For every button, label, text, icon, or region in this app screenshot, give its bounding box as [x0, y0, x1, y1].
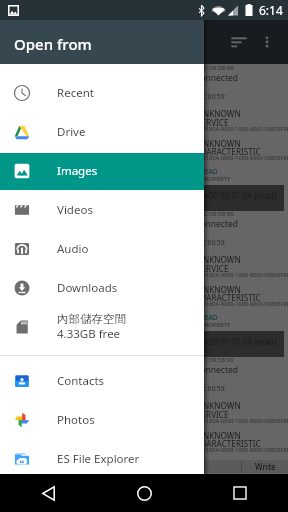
staticText: SERVICE	[197, 263, 229, 274]
staticText: SERVICE	[197, 409, 229, 420]
staticText: 0x00 00 01 0A (read)	[200, 336, 277, 347]
staticText: 0000180A-0000-1000-8000-00805F9B34FB	[193, 154, 288, 162]
button[interactable]: Recent	[0, 73, 204, 112]
staticText: Connected	[195, 218, 238, 230]
staticText: Drive	[57, 124, 86, 140]
button[interactable]: Write	[242, 460, 288, 473]
staticText: 內部儲存空間	[57, 312, 126, 326]
staticText: Images	[57, 163, 98, 179]
staticText: PROPERTY	[201, 175, 231, 183]
staticText: 0000180A-0000-1000-8000-00805F9B34FB	[193, 300, 288, 308]
staticText: READ	[201, 313, 218, 322]
staticText: PROPERTY	[201, 467, 231, 475]
button[interactable]: More options	[254, 29, 280, 55]
staticText: Enable notification	[85, 461, 157, 472]
staticText: READ	[201, 459, 218, 468]
staticText: UNKNOWN	[197, 284, 241, 295]
staticText: Connected	[195, 72, 238, 84]
staticText: 0000180A-0000-1000-8000-00805F9B34FB	[193, 446, 288, 454]
button[interactable]: 內部儲存空間	[0, 307, 204, 346]
staticText: VC:60:50:	[198, 92, 227, 101]
button[interactable]: Photos	[0, 400, 204, 439]
staticText: Open from	[14, 34, 92, 54]
staticText: CHARACTERISTIC	[195, 438, 261, 449]
staticText: ES File Explorer	[57, 451, 140, 467]
staticText: VC:60:50:	[198, 384, 227, 393]
staticText: Videos	[57, 202, 93, 218]
staticText: Audio	[57, 241, 89, 257]
button[interactable]: Videos	[0, 190, 204, 229]
staticText: - - -	[196, 226, 205, 234]
staticText: - - -	[196, 80, 205, 88]
button[interactable]: ES File Explorer	[0, 439, 204, 478]
button[interactable]: Downloads	[0, 268, 204, 307]
staticText: VC:60:50:	[198, 238, 227, 247]
button[interactable]: Home	[96, 474, 192, 512]
button[interactable]: Back	[0, 474, 96, 512]
staticText: 0000180A-0000-1000-8000-00805F9B34FB	[193, 271, 288, 279]
staticText: PROPERTY	[201, 321, 231, 329]
button[interactable]: Recent apps	[192, 474, 288, 512]
staticText: Downloads	[57, 280, 118, 296]
staticText: 6:14	[259, 2, 283, 18]
staticText: F4:4E:6C:38:5B:96	[184, 210, 234, 218]
staticText: UNKNOWN	[197, 400, 241, 411]
staticText: UNKNOWN	[197, 430, 241, 441]
staticText: 0x00 00 01 0A (read)	[200, 190, 277, 201]
staticText: F4:4E:6C:38:5B:96	[184, 356, 234, 364]
staticText: 4.33GB free	[57, 326, 121, 342]
staticText: SERVICE	[197, 117, 229, 128]
button[interactable]: Images	[0, 151, 204, 190]
staticText: Recent	[57, 85, 94, 101]
staticText: CHARACTERISTIC	[195, 292, 261, 303]
button[interactable]: Drive	[0, 112, 204, 151]
button[interactable]: Contacts	[0, 361, 204, 400]
button[interactable]: Enable notification	[0, 460, 241, 473]
staticText: UNKNOWN	[197, 254, 241, 265]
staticText: Photos	[57, 412, 95, 428]
button[interactable]: Sort	[224, 27, 254, 57]
staticText: Contacts	[57, 373, 105, 389]
staticText: UNKNOWN	[197, 108, 241, 119]
staticText: 0x00 00 01 0A (read)	[200, 482, 277, 493]
staticText: Write	[255, 461, 276, 472]
staticText: F4:4E:6C:38:5B:96	[184, 64, 234, 72]
staticText: 0000180A-0000-1000-8000-00805F9B34FB	[193, 125, 288, 133]
staticText: UNKNOWN	[197, 138, 241, 149]
staticText: CHARACTERISTIC	[195, 146, 261, 157]
button[interactable]: Audio	[0, 229, 204, 268]
staticText: - - -	[196, 372, 205, 380]
staticText: READ	[201, 167, 218, 176]
staticText: 0000180A-0000-1000-8000-00805F9B34FB	[193, 417, 288, 425]
staticText: Connected	[195, 364, 238, 376]
